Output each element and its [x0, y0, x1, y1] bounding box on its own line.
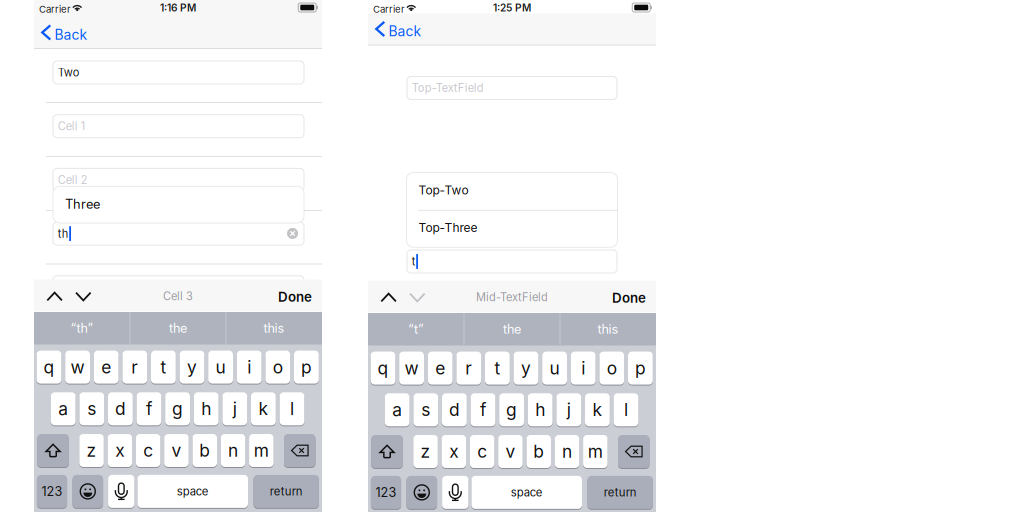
button[interactable]: i — [571, 351, 596, 385]
button[interactable]: b — [192, 433, 217, 467]
button[interactable]: c — [136, 433, 160, 467]
button[interactable]: the — [464, 313, 560, 345]
button[interactable]: r — [456, 351, 481, 385]
button[interactable]: x — [108, 433, 132, 467]
staticText: p — [301, 357, 312, 378]
button[interactable]: Next field — [403, 280, 431, 312]
button[interactable]: l — [280, 392, 304, 426]
staticText: u — [550, 358, 560, 379]
button[interactable]: d — [442, 393, 467, 427]
button[interactable]: Delete — [284, 433, 315, 467]
button[interactable]: Previous field — [40, 279, 69, 311]
button[interactable]: z — [413, 434, 438, 468]
staticText: w — [405, 358, 419, 379]
staticText: Mid-TextField — [476, 290, 548, 304]
button[interactable]: x — [442, 434, 466, 468]
button[interactable]: space — [471, 475, 582, 509]
button[interactable]: q — [37, 350, 61, 384]
button[interactable]: Emoji — [406, 475, 437, 509]
button[interactable]: t — [485, 351, 510, 385]
button[interactable]: 123 — [37, 474, 67, 508]
staticText: Three — [65, 196, 100, 212]
button[interactable]: this — [226, 312, 322, 344]
button[interactable]: the — [130, 312, 226, 344]
button[interactable]: e — [428, 351, 453, 385]
button[interactable]: Back — [41, 17, 97, 48]
button[interactable]: p — [628, 351, 653, 385]
button[interactable]: y — [514, 351, 538, 385]
button[interactable]: h — [528, 393, 553, 427]
button[interactable]: v — [164, 433, 189, 467]
button[interactable]: b — [526, 434, 551, 468]
button[interactable]: Emoji — [72, 474, 103, 508]
button[interactable]: u — [208, 350, 233, 384]
button[interactable]: z — [79, 433, 104, 467]
button[interactable]: n — [555, 434, 579, 468]
staticText: space — [511, 485, 543, 499]
button[interactable]: e — [94, 350, 119, 384]
button[interactable]: a — [385, 393, 410, 427]
button[interactable]: r — [122, 350, 147, 384]
button[interactable]: return — [587, 475, 653, 509]
button[interactable]: Dictate — [108, 474, 134, 508]
button[interactable]: Delete — [618, 434, 649, 468]
button[interactable]: p — [294, 350, 319, 384]
button[interactable]: Shift — [371, 434, 403, 468]
button[interactable]: Top-Three — [406, 210, 617, 247]
button[interactable]: “t” — [368, 313, 464, 345]
staticText: g — [506, 399, 517, 420]
button[interactable]: n — [221, 433, 245, 467]
button[interactable]: s — [79, 392, 104, 426]
staticText: s — [87, 398, 96, 419]
button[interactable]: l — [614, 393, 638, 427]
button[interactable]: k — [585, 393, 610, 427]
button[interactable]: Dictate — [442, 475, 468, 509]
staticText: u — [216, 357, 226, 378]
button[interactable]: c — [470, 434, 494, 468]
button[interactable]: o — [265, 350, 290, 384]
button[interactable]: Done — [594, 280, 646, 312]
staticText: q — [43, 357, 54, 378]
button[interactable]: “th” — [34, 312, 130, 344]
staticText: h — [535, 399, 545, 420]
button[interactable]: m — [583, 434, 608, 468]
button[interactable]: f — [137, 392, 161, 426]
button[interactable]: t — [151, 350, 176, 384]
staticText: Done — [612, 290, 646, 306]
button[interactable]: q — [371, 351, 395, 385]
button[interactable]: g — [165, 392, 190, 426]
button[interactable]: Clear text — [287, 228, 298, 239]
staticText: e — [101, 357, 111, 378]
staticText: this — [263, 321, 284, 336]
button[interactable]: Shift — [37, 433, 69, 467]
button[interactable]: i — [237, 350, 262, 384]
button[interactable]: return — [253, 474, 319, 508]
button[interactable]: v — [498, 434, 523, 468]
button[interactable]: f — [471, 393, 495, 427]
button[interactable]: y — [180, 350, 204, 384]
button[interactable]: Three — [53, 186, 304, 223]
button[interactable]: j — [556, 393, 581, 427]
button[interactable]: o — [599, 351, 624, 385]
button[interactable]: s — [413, 393, 438, 427]
button[interactable]: w — [65, 350, 90, 384]
button[interactable]: d — [108, 392, 133, 426]
button[interactable]: Previous field — [374, 280, 403, 312]
button[interactable]: g — [499, 393, 524, 427]
button[interactable]: a — [51, 392, 76, 426]
button[interactable]: space — [137, 474, 248, 508]
button[interactable]: h — [194, 392, 219, 426]
button[interactable]: Back — [375, 13, 431, 44]
button[interactable]: j — [222, 392, 247, 426]
button[interactable]: u — [542, 351, 567, 385]
staticText: z — [421, 441, 431, 462]
button[interactable]: Done — [260, 279, 312, 311]
button[interactable]: k — [251, 392, 276, 426]
button[interactable]: 123 — [371, 475, 401, 509]
button[interactable]: w — [399, 351, 424, 385]
button[interactable]: Next field — [69, 279, 97, 311]
button[interactable]: this — [560, 313, 656, 345]
button[interactable]: m — [249, 433, 274, 467]
button[interactable]: Top-Two — [406, 172, 617, 210]
staticText: j — [233, 398, 237, 419]
